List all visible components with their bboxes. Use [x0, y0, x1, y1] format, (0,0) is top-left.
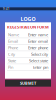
staticText: Email: [8, 38, 18, 44]
staticText: Select city: [31, 51, 48, 57]
staticText: Pin: [8, 64, 13, 70]
staticText: Enter name: [28, 32, 48, 37]
staticText: Enter email: [28, 38, 48, 44]
staticText: Enter pin: [33, 64, 48, 70]
staticText: Name: [8, 32, 19, 37]
staticText: 9:41: [3, 7, 10, 11]
staticText: SUBMIT: [20, 80, 36, 86]
staticText: Enter phone: [28, 45, 48, 50]
staticText: City: [8, 51, 15, 57]
staticText: LOGO: [20, 15, 35, 22]
staticText: REGISTRATION FORM: [7, 24, 49, 30]
staticText: Phone: [8, 45, 18, 50]
staticText: State: [8, 58, 16, 63]
staticText: Select state: [29, 58, 48, 63]
button[interactable]: SUBMIT: [5, 80, 51, 87]
